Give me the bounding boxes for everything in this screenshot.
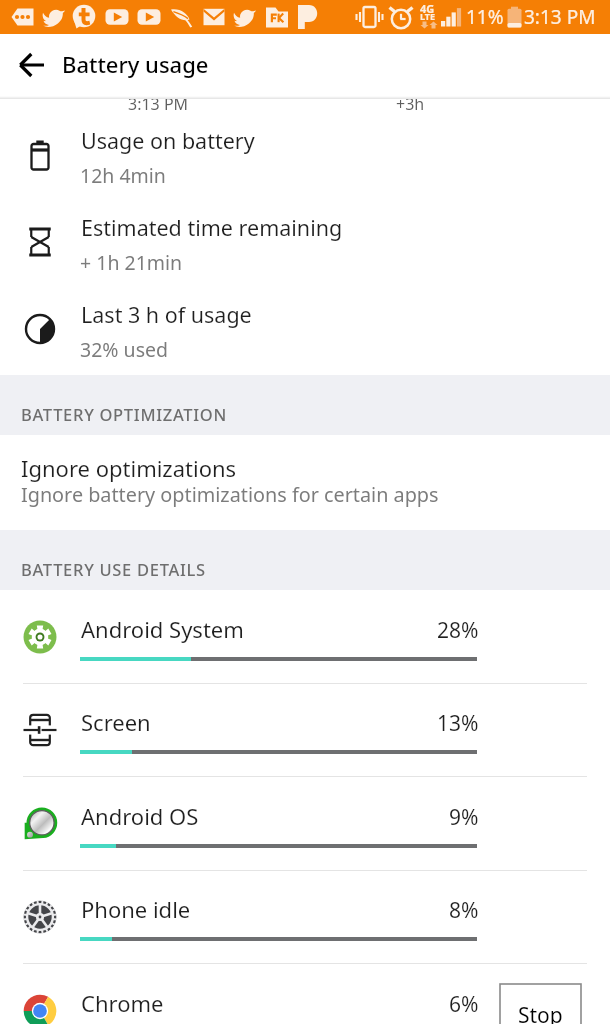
button[interactable]: Estimated time remaining: [0, 204, 610, 291]
staticText: BATTERY OPTIMIZATION: [21, 403, 227, 425]
staticText: 28%: [437, 616, 479, 645]
staticText: BATTERY USE DETAILS: [21, 558, 206, 580]
staticText: 3:13 PM: [524, 4, 596, 30]
staticText: Phone idle: [81, 894, 191, 924]
button[interactable]: Screen: [0, 683, 610, 777]
staticText: 3:13 PM: [128, 93, 189, 115]
staticText: LTE: [420, 10, 436, 22]
button[interactable]: Last 3 h of usage: [0, 291, 610, 378]
button[interactable]: Phone idle: [0, 870, 610, 964]
staticText: 6%: [449, 990, 479, 1019]
staticText: Usage on battery: [81, 126, 255, 155]
staticText: Last 3 h of usage: [81, 300, 252, 329]
staticText: 8%: [449, 896, 479, 925]
staticText: 32% used: [80, 336, 168, 363]
staticText: Android OS: [81, 801, 199, 831]
staticText: 12h 4min: [80, 162, 166, 189]
button[interactable]: Stop: [500, 984, 581, 1024]
staticText: Estimated time remaining: [81, 213, 343, 242]
staticText: 9%: [449, 803, 479, 832]
staticText: + 1h 21min: [80, 249, 183, 276]
button[interactable]: Chrome: [0, 964, 610, 1024]
staticText: Ignore battery optimizations for certain…: [21, 481, 439, 508]
staticText: 4G: [420, 1, 435, 16]
staticText: Screen: [81, 707, 151, 737]
staticText: Chrome: [81, 988, 164, 1018]
button[interactable]: Usage on battery: [0, 117, 610, 204]
button[interactable]: Back: [10, 43, 54, 87]
staticText: Battery usage: [62, 49, 209, 79]
staticText: Stop: [518, 1001, 563, 1024]
button[interactable]: Android OS: [0, 777, 610, 871]
staticText: 11%: [466, 4, 504, 30]
button[interactable]: Ignore optimizations: [0, 435, 610, 530]
staticText: Android System: [81, 614, 244, 644]
staticText: Ignore optimizations: [21, 453, 237, 483]
staticText: +3h: [396, 93, 425, 115]
button[interactable]: Android System: [0, 590, 610, 684]
staticText: 13%: [437, 709, 479, 738]
